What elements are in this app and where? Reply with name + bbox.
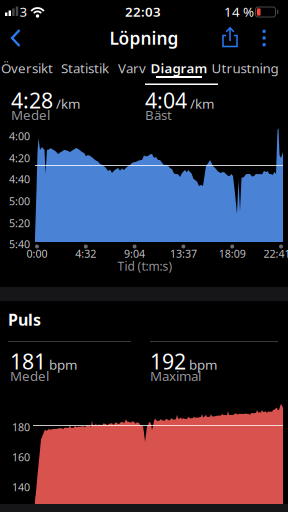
staticText: 22:41 [263, 246, 288, 261]
staticText: /km [56, 95, 80, 112]
staticText: /km [190, 95, 214, 112]
staticText: 5:00 [9, 194, 30, 208]
staticText: 4:00 [9, 129, 30, 143]
staticText: 14 % [224, 3, 254, 20]
staticText: 4:04 [145, 86, 187, 114]
staticText: 5:40 [9, 237, 30, 251]
button[interactable]: Utrustning [211, 59, 278, 77]
staticText: bpm [189, 356, 217, 373]
staticText: Medel [10, 367, 49, 385]
staticText: Bäst [145, 106, 172, 124]
staticText: 192 [150, 347, 186, 375]
staticText: Statistik [61, 59, 109, 77]
staticText: 0:00 [26, 246, 47, 261]
staticText: 3 [19, 3, 27, 20]
button[interactable]: More [258, 28, 270, 48]
staticText: 22:03 [125, 3, 161, 20]
staticText: 9:04 [124, 246, 145, 261]
staticText: 4:20 [9, 151, 30, 165]
staticText: Varv [118, 59, 146, 77]
button[interactable]: Översikt [1, 59, 53, 77]
staticText: Diagram [150, 59, 207, 77]
staticText: 4:32 [75, 246, 96, 261]
button[interactable]: Back [8, 27, 26, 49]
staticText: Puls [8, 309, 41, 330]
button[interactable]: Statistik [61, 59, 109, 77]
staticText: bpm [49, 356, 77, 373]
staticText: 140 [12, 480, 30, 494]
button[interactable]: Varv [118, 59, 146, 77]
staticText: Översikt [1, 59, 53, 77]
button[interactable]: Diagram [148, 61, 210, 78]
staticText: Maximal [150, 367, 201, 385]
button[interactable]: Share [219, 26, 241, 48]
staticText: Medel [11, 106, 50, 124]
staticText: 4:40 [9, 172, 30, 186]
staticText: 181 [10, 347, 46, 375]
staticText: Löpning [109, 26, 178, 49]
staticText: 160 [12, 450, 30, 464]
staticText: Utrustning [211, 59, 278, 77]
staticText: 18:09 [219, 246, 246, 261]
staticText: 4:28 [11, 86, 53, 114]
staticText: 180 [12, 420, 30, 434]
staticText: 13:37 [170, 246, 197, 261]
staticText: 5:20 [9, 216, 30, 230]
staticText: Tid (t:m:s) [117, 258, 172, 274]
